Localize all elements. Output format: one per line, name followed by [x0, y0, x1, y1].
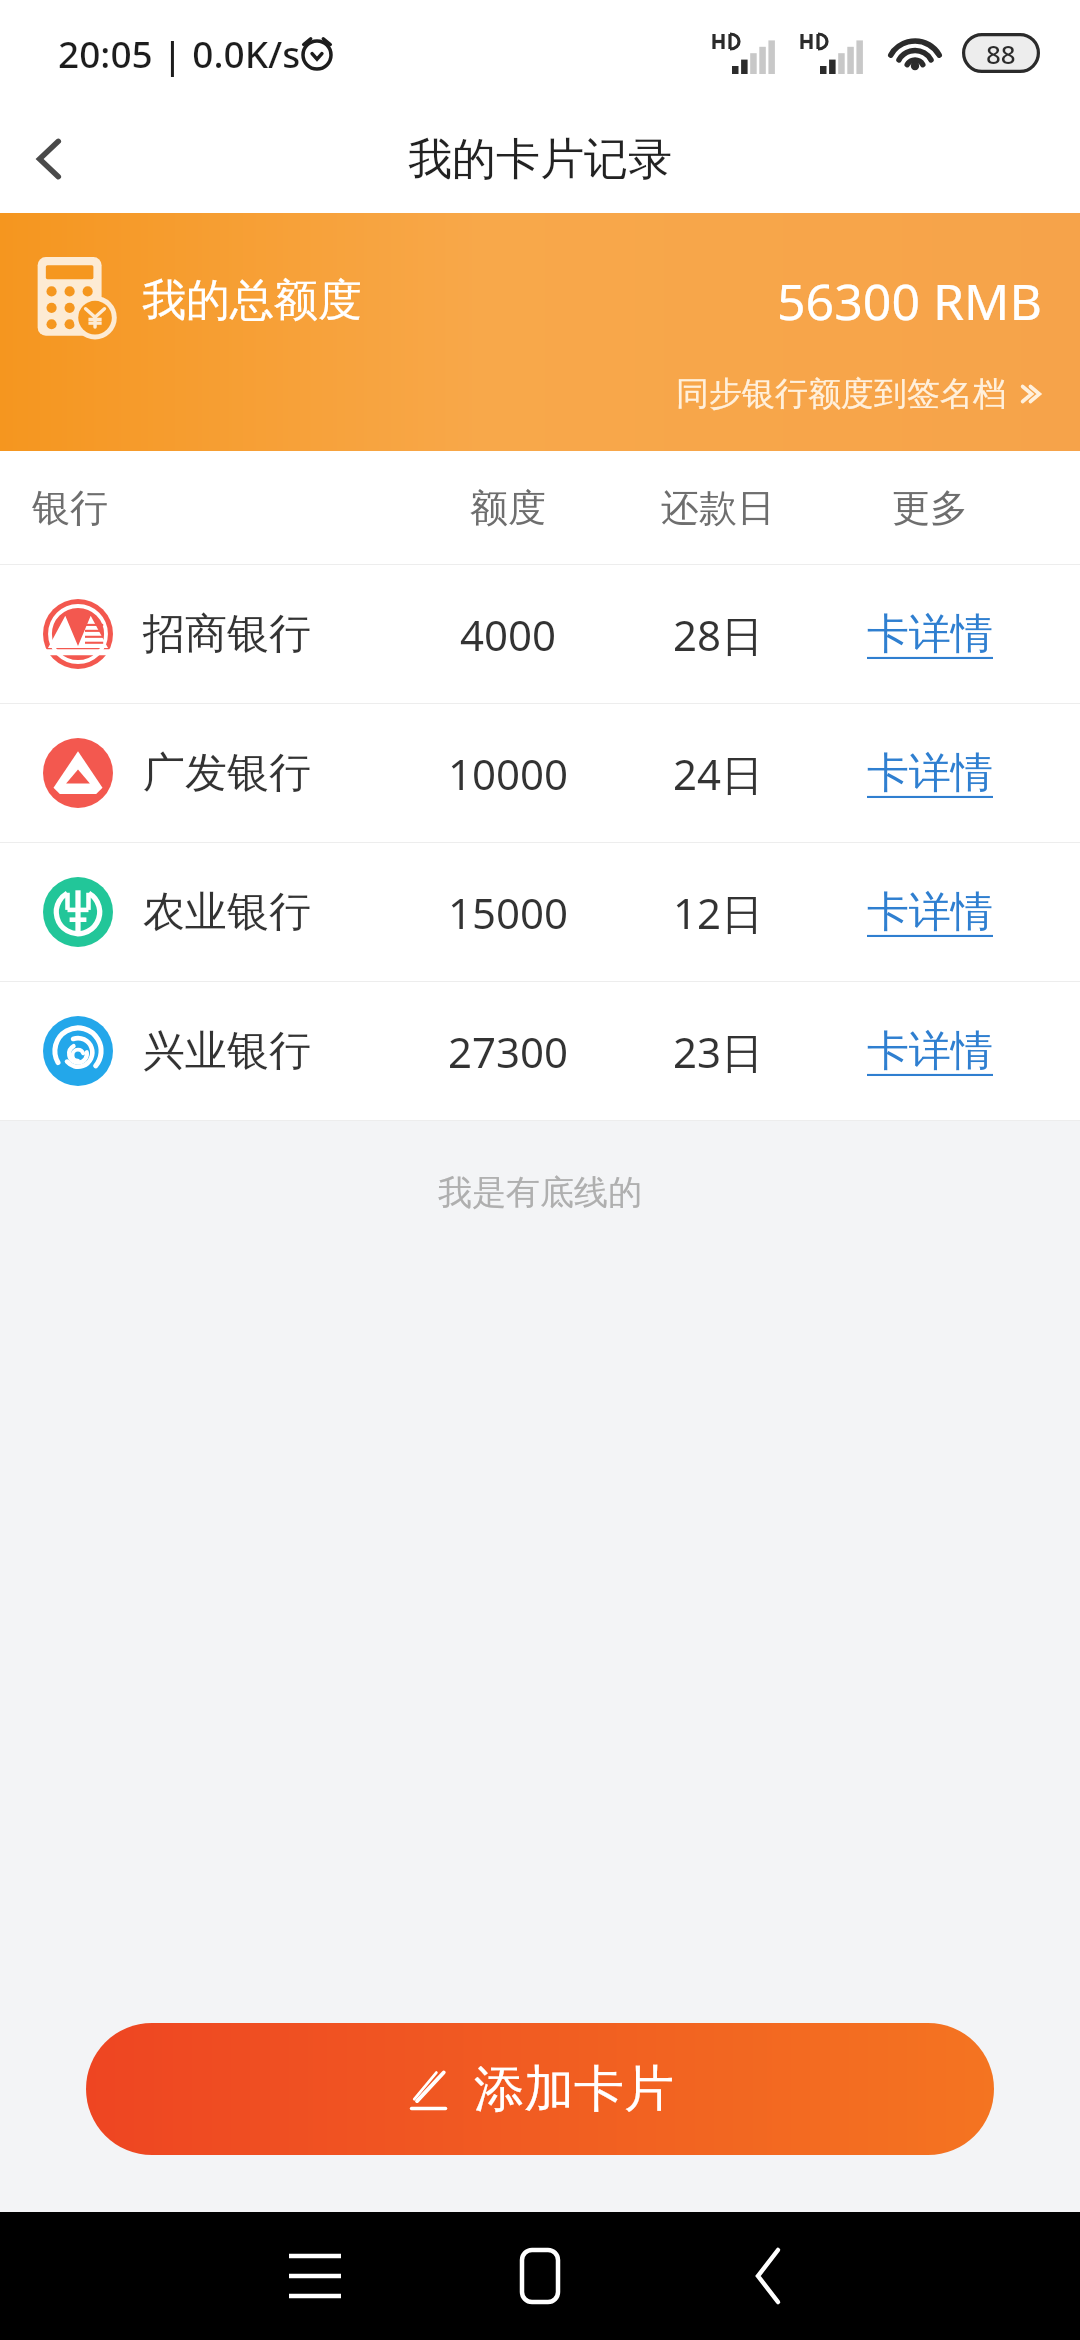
staticText: 24日 — [673, 745, 764, 802]
staticText: 我的总额度 — [142, 273, 362, 328]
staticText: 卡详情 — [867, 747, 993, 800]
staticText: 我是有底线的 — [0, 1171, 1080, 1214]
staticText: 招商银行 — [143, 608, 311, 661]
staticText: 27300 — [448, 1023, 569, 1080]
staticText: 更多 — [892, 484, 968, 532]
staticText: 银行 — [32, 484, 108, 532]
staticText: 卡详情 — [867, 886, 993, 939]
button[interactable]: 添加卡片 — [86, 2023, 994, 2155]
staticText: 15000 — [448, 884, 569, 941]
staticText: 卡详情 — [867, 1025, 993, 1078]
staticText: 我的卡片记录 — [408, 132, 672, 187]
staticText: 12日 — [673, 884, 764, 941]
button[interactable]: 卡详情 — [820, 565, 1040, 703]
staticText: 28日 — [673, 606, 764, 663]
staticText: 同步银行额度到签名档 — [676, 373, 1006, 415]
staticText: 额度 — [470, 484, 546, 532]
staticText: 广发银行 — [143, 747, 311, 800]
staticText: 56300 RMB — [777, 267, 1042, 335]
button[interactable]: Back — [708, 2216, 828, 2336]
staticText: 还款日 — [661, 484, 775, 532]
staticText: 20:05 | 0.0K/s — [58, 28, 301, 78]
button[interactable]: Home — [480, 2216, 600, 2336]
button[interactable]: 卡详情 — [820, 843, 1040, 981]
staticText: 农业银行 — [143, 886, 311, 939]
button[interactable]: Back — [0, 109, 100, 209]
button[interactable]: 卡详情 — [820, 982, 1040, 1120]
button[interactable]: 兴业银行 — [0, 982, 1080, 1120]
button[interactable]: 卡详情 — [820, 704, 1040, 842]
staticText: 兴业银行 — [143, 1025, 311, 1078]
button[interactable]: 招商银行 — [0, 565, 1080, 703]
button[interactable]: Recents — [255, 2216, 375, 2336]
staticText: 卡详情 — [867, 608, 993, 661]
staticText: 4000 — [460, 606, 557, 663]
button[interactable]: 农业银行 — [0, 843, 1080, 981]
button[interactable]: 同步银行额度到签名档 — [676, 373, 1046, 415]
staticText: 10000 — [448, 745, 569, 802]
staticText: 添加卡片 — [474, 2058, 674, 2121]
button[interactable]: 我的总额度 — [0, 213, 1080, 451]
staticText: 23日 — [673, 1023, 764, 1080]
staticText: 88 — [986, 36, 1016, 71]
button[interactable]: 广发银行 — [0, 704, 1080, 842]
